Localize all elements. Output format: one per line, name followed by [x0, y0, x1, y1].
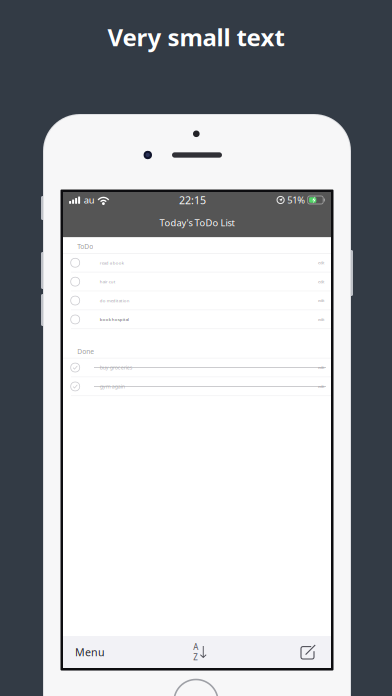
button[interactable]: Menu	[63, 636, 105, 668]
staticText: A	[193, 642, 198, 652]
staticText: read a book	[100, 260, 124, 266]
staticText: 51%	[287, 194, 305, 206]
staticText: do meditation	[100, 298, 130, 303]
staticText: hair cut	[100, 279, 116, 284]
button[interactable]: do meditation	[63, 291, 331, 310]
staticText: ToDo	[77, 242, 93, 251]
staticText: edit	[318, 298, 324, 303]
staticText: edit	[318, 260, 324, 265]
button[interactable]: Sort	[185, 636, 215, 668]
staticText: Very small text	[107, 21, 284, 53]
staticText: gym again	[100, 383, 125, 390]
button[interactable]: gym again	[63, 377, 331, 396]
button[interactable]: buy groceries	[63, 358, 331, 377]
staticText: edit	[318, 384, 324, 389]
button[interactable]: Compose	[295, 636, 331, 668]
staticText: edit	[318, 317, 324, 322]
staticText: Z	[193, 652, 198, 662]
staticText: edit	[318, 365, 324, 370]
button[interactable]: read a book	[63, 254, 331, 273]
button[interactable]: hair cut	[63, 273, 331, 291]
staticText: Done	[77, 347, 94, 356]
staticText: Today's ToDo List	[159, 217, 234, 229]
staticText: au	[84, 194, 95, 206]
staticText: buy groceries	[100, 364, 133, 371]
staticText: book hospital	[100, 316, 129, 322]
button[interactable]: book hospital	[63, 310, 331, 329]
staticText: 22:15	[179, 193, 206, 207]
staticText: Menu	[75, 645, 105, 659]
staticText: edit	[318, 279, 324, 284]
